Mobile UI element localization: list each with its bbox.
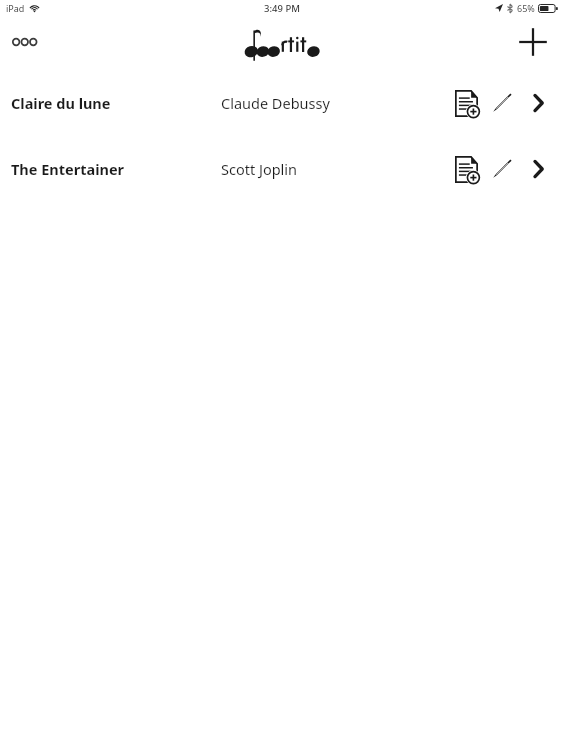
button[interactable]: Open Claire du lune [521,86,555,120]
staticText: Claire du lune [11,93,111,113]
button[interactable]: Claire du lune [0,82,563,124]
button[interactable]: Add page to Claire du lune [449,86,483,120]
button[interactable]: Add page to The Entertainer [449,152,483,186]
button[interactable]: The Entertainer [0,148,563,190]
staticText: iPad [6,2,25,14]
button[interactable]: Edit Claire du lune [485,86,519,120]
staticText: Claude Debussy [221,93,330,113]
staticText: Scott Joplin [221,159,298,179]
staticText: 3:49 PM [264,2,300,15]
button[interactable]: More options [4,20,48,64]
button[interactable]: Open The Entertainer [521,152,555,186]
button[interactable]: Add score [509,18,557,66]
button[interactable]: Edit The Entertainer [485,152,519,186]
staticText: The Entertainer [11,159,125,179]
staticText: 65% [517,2,535,14]
